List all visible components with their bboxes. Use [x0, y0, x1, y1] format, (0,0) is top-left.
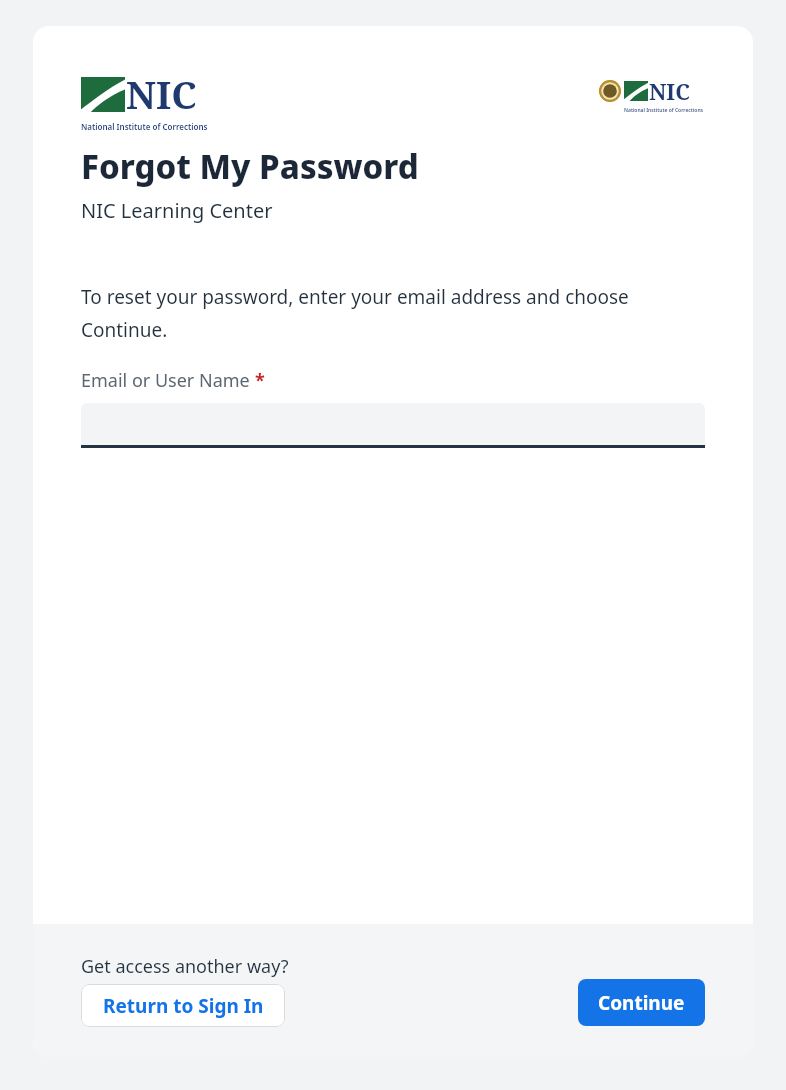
staticText: Email or User Name [81, 368, 250, 393]
staticText: Forgot My Password [81, 144, 419, 189]
staticText: NIC [126, 68, 197, 120]
staticText: * [255, 368, 265, 393]
staticText: Return to Sign In [103, 993, 264, 1019]
staticText: NIC [649, 76, 690, 106]
staticText: Get access another way? [81, 954, 289, 979]
staticText: National Institute of Corrections [624, 107, 704, 114]
button[interactable] [81, 403, 705, 448]
button[interactable]: Continue [578, 979, 705, 1026]
staticText: To reset your password, enter your email… [81, 284, 629, 342]
staticText: NIC Learning Center [81, 197, 273, 224]
staticText: Continue [598, 990, 685, 1016]
button[interactable]: Return to Sign In [81, 984, 285, 1027]
staticText: National Institute of Corrections [81, 121, 208, 132]
